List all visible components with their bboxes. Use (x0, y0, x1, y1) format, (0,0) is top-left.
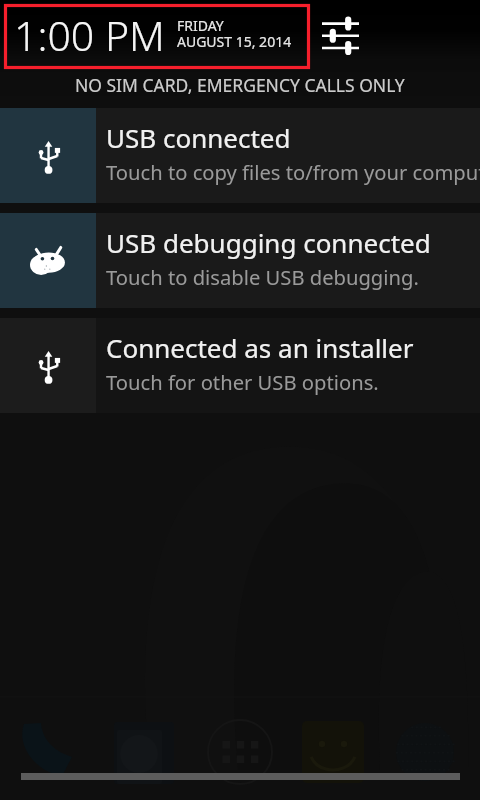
button[interactable]: Quick settings (318, 14, 362, 58)
staticText: USB debugging connected (106, 225, 431, 260)
staticText: Touch to copy files to/from your compute… (106, 158, 480, 186)
staticText: NO SIM CARD, EMERGENCY CALLS ONLY (75, 73, 405, 97)
staticText: AUGUST 15, 2014 (177, 32, 292, 51)
button[interactable]: USB debugging connected (0, 213, 480, 308)
staticText: Connected as an installer (106, 330, 414, 365)
button[interactable]: Connected as an installer (0, 318, 480, 413)
staticText: Touch for other USB options. (106, 368, 379, 396)
staticText: 1:00 PM (14, 7, 165, 63)
staticText: Touch to disable USB debugging. (106, 263, 419, 291)
button[interactable]: 1:00 PM (5, 4, 309, 68)
staticText: USB connected (106, 120, 291, 155)
staticText: FRIDAY (177, 16, 224, 35)
button[interactable]: USB connected (0, 108, 480, 203)
